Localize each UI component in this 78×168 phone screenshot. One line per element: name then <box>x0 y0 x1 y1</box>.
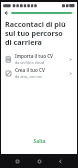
button[interactable]: Crea il tuo CV <box>1 66 77 80</box>
button[interactable]: Indietro <box>3 10 9 16</box>
staticText: Raccontaci di più sul tuo percorso di ca… <box>5 19 71 47</box>
button[interactable]: Panoramica <box>15 159 20 164</box>
staticText: Salta <box>33 138 46 145</box>
staticText: da un file o cloud <box>15 60 44 65</box>
button[interactable]: Salta <box>28 136 51 147</box>
staticText: da zero, con noi <box>15 74 42 79</box>
button[interactable]: Indietro <box>58 159 63 164</box>
button[interactable]: Home <box>37 159 42 164</box>
staticText: Importa il tuo CV <box>15 53 54 59</box>
staticText: Crea il tuo CV <box>15 67 45 73</box>
button[interactable]: Importa il tuo CV <box>1 52 77 66</box>
